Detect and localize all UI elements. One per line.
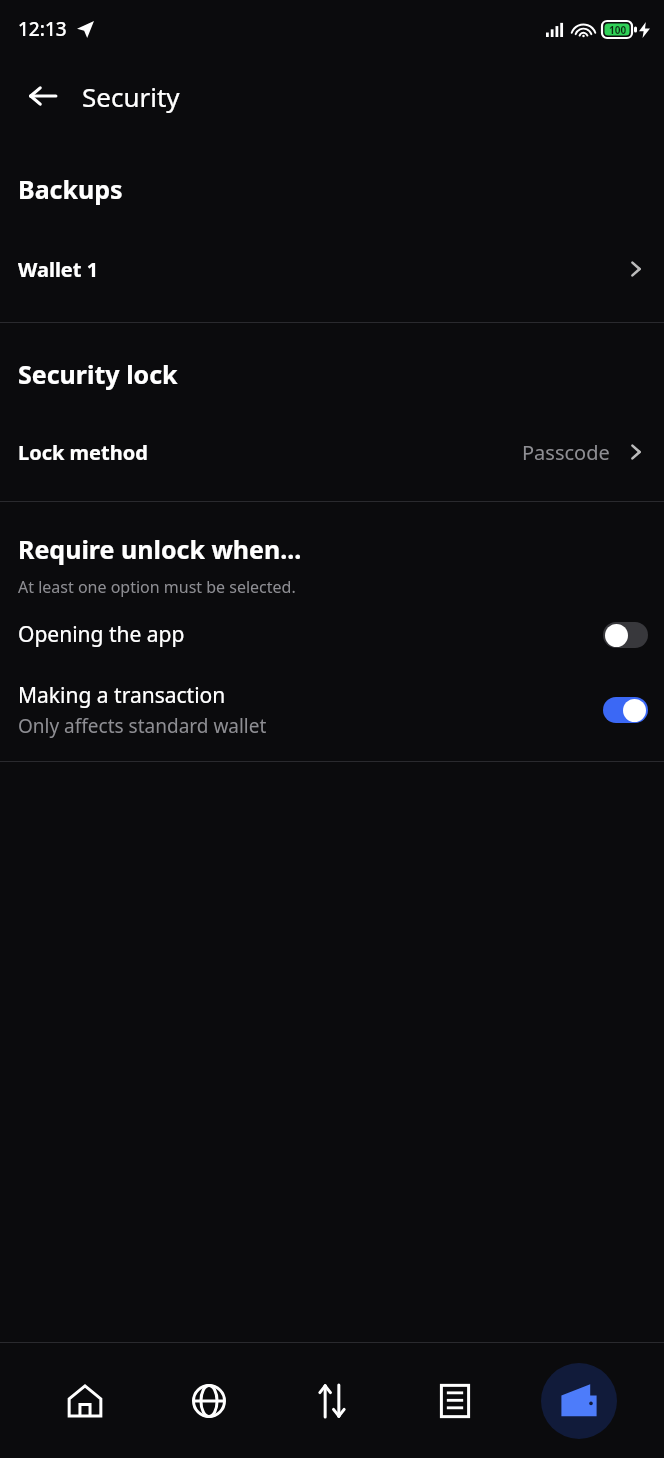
button[interactable]: Off — [603, 622, 648, 648]
button[interactable]: Wallet 1 — [0, 246, 664, 292]
staticText: Making a transaction — [18, 681, 226, 710]
staticText: Lock method — [18, 439, 148, 466]
button[interactable]: Wallet — [541, 1363, 617, 1439]
staticText: Security — [82, 79, 180, 114]
button[interactable]: Back — [18, 71, 68, 121]
staticText: Security lock — [18, 357, 178, 391]
button[interactable]: Home — [47, 1363, 123, 1439]
button[interactable]: Lock method — [0, 429, 664, 475]
button[interactable]: Making a transaction — [0, 681, 664, 739]
staticText: Only affects standard wallet — [18, 713, 267, 739]
staticText: 100 — [609, 23, 627, 37]
staticText: Passcode — [522, 439, 610, 466]
staticText: At least one option must be selected. — [18, 576, 296, 598]
button[interactable]: History — [417, 1363, 493, 1439]
staticText: Opening the app — [18, 620, 185, 649]
button[interactable]: On — [603, 697, 648, 723]
staticText: Require unlock when... — [18, 532, 302, 566]
staticText: Backups — [18, 172, 123, 206]
button[interactable]: Opening the app — [0, 620, 664, 649]
button[interactable]: Transfer — [294, 1363, 370, 1439]
staticText: 12:13 — [18, 16, 67, 42]
button[interactable]: Browser — [171, 1363, 247, 1439]
staticText: Wallet 1 — [18, 256, 99, 283]
